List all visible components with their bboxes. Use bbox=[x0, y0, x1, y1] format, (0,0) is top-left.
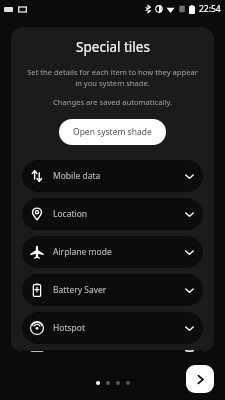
staticText: Open system shade bbox=[73, 126, 152, 138]
staticText: Battery Saver bbox=[53, 284, 184, 296]
button[interactable]: Hotspot bbox=[22, 312, 203, 344]
button[interactable]: Battery Saver bbox=[22, 274, 203, 306]
staticText: 22:54 bbox=[199, 3, 221, 15]
staticText: Changes are saved automatically. bbox=[53, 97, 172, 107]
staticText: Mobile data bbox=[53, 170, 184, 182]
staticText: Location bbox=[53, 208, 184, 220]
staticText: Set the details for each item to how the… bbox=[23, 67, 202, 88]
button[interactable]: Open system shade bbox=[59, 119, 166, 145]
button[interactable]: Location bbox=[22, 198, 203, 230]
staticText: Hotspot bbox=[53, 322, 184, 334]
button[interactable]: Airplane mode bbox=[22, 236, 203, 268]
button[interactable]: Mobile data bbox=[22, 160, 203, 192]
button[interactable]: NFC bbox=[22, 350, 203, 352]
button[interactable]: Next bbox=[186, 365, 214, 393]
staticText: Special tiles bbox=[76, 38, 150, 56]
staticText: Airplane mode bbox=[53, 246, 184, 258]
